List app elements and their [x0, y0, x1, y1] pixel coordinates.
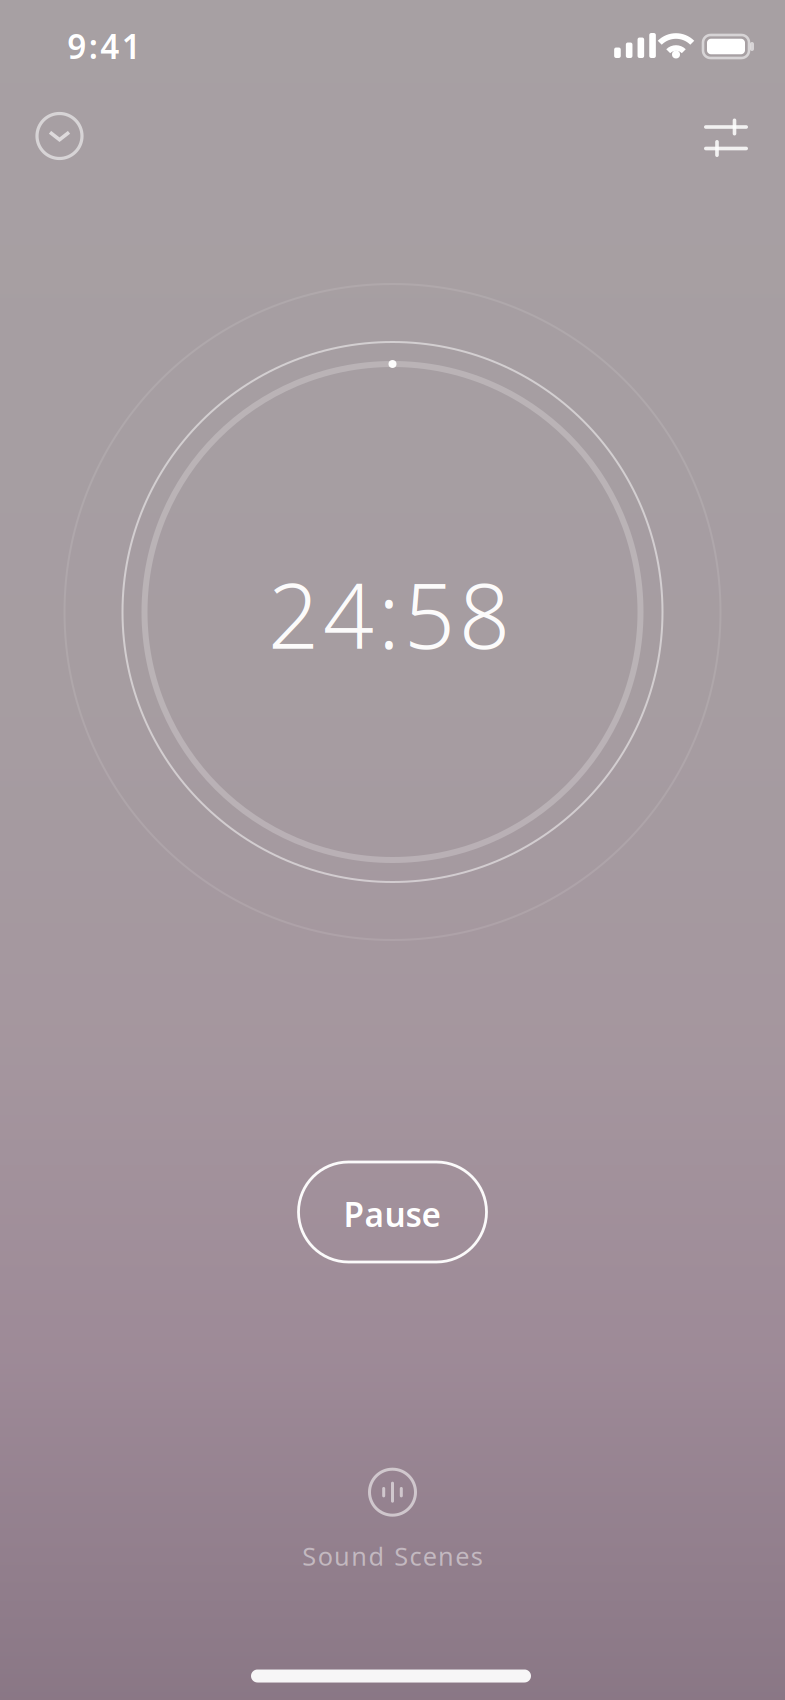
button[interactable]: Minimize — [31, 108, 87, 164]
staticText: Sound Scenes — [302, 1539, 483, 1573]
button[interactable]: Pause — [298, 1162, 486, 1262]
button[interactable]: Sound Scenes — [302, 1469, 483, 1573]
staticText: Pause — [343, 1192, 441, 1236]
staticText: 24:58 — [268, 555, 510, 673]
staticText: 9:41 — [67, 24, 141, 68]
button[interactable]: Timer settings — [697, 109, 755, 167]
